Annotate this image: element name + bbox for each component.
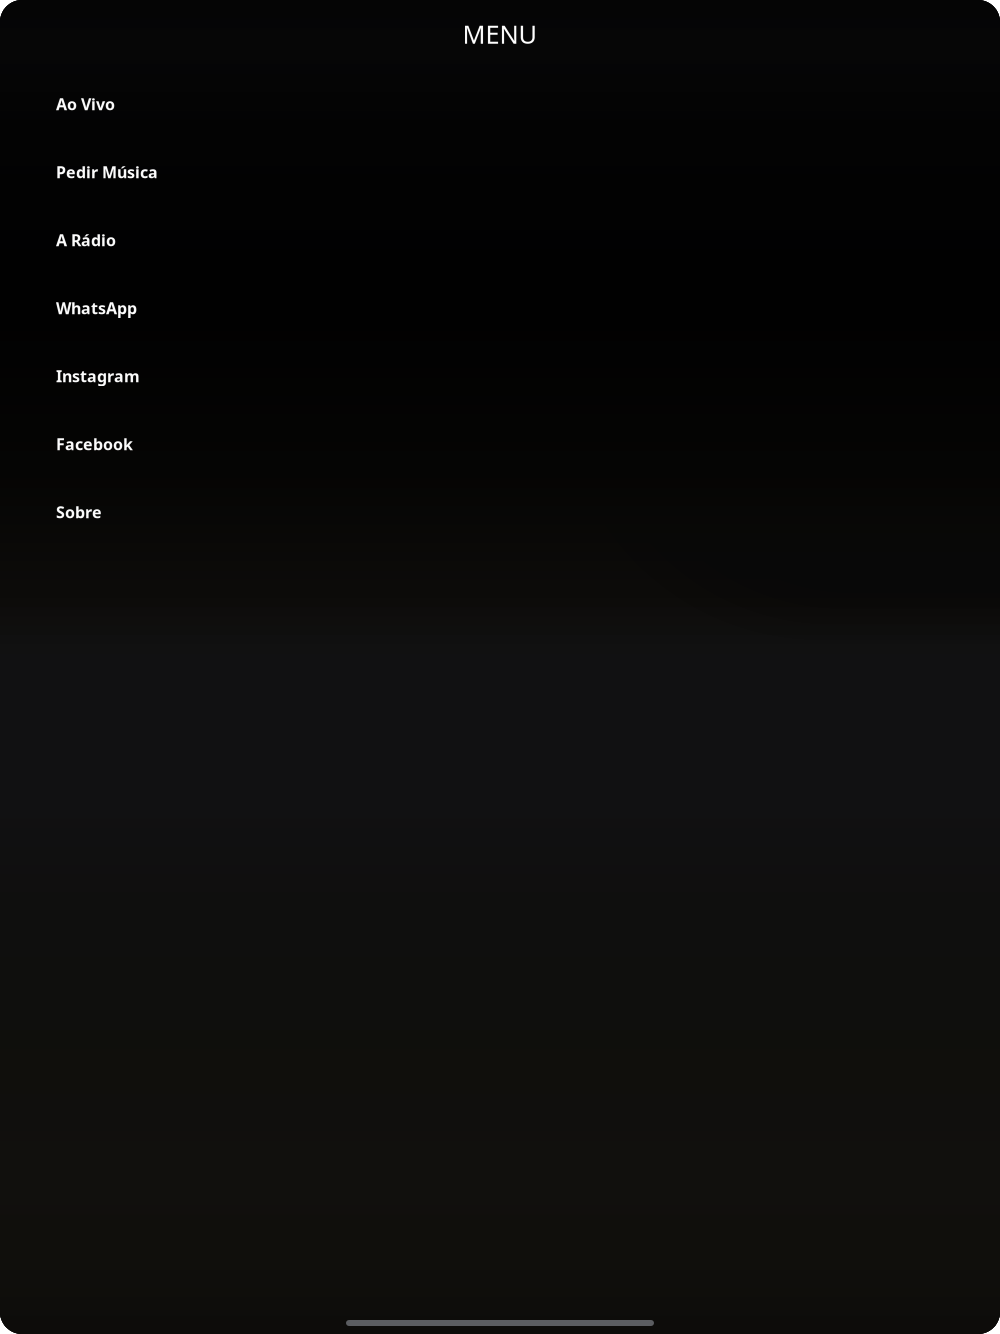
staticText: Instagram [56,365,140,387]
button[interactable]: Facebook [0,410,1000,478]
staticText: Sobre [56,501,102,523]
button[interactable]: A Rádio [0,206,1000,274]
button[interactable]: Pedir Música [0,138,1000,206]
button[interactable]: Ao Vivo [0,70,1000,138]
staticText: A Rádio [56,229,116,251]
button[interactable]: Instagram [0,342,1000,410]
staticText: MENU [462,17,537,51]
staticText: Pedir Música [56,161,158,183]
staticText: WhatsApp [56,297,137,319]
staticText: Facebook [56,433,133,455]
staticText: Ao Vivo [56,93,115,115]
button[interactable]: Sobre [0,478,1000,546]
button[interactable]: WhatsApp [0,274,1000,342]
